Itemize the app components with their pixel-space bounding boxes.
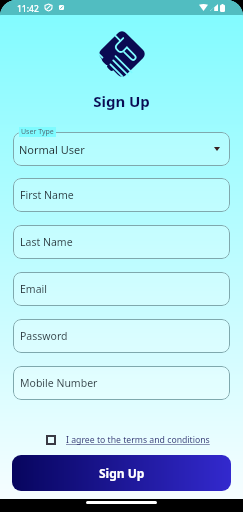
staticText: Email: [20, 282, 47, 296]
staticText: Password: [20, 329, 68, 343]
button[interactable]: First Name: [13, 178, 230, 212]
staticText: User Type: [21, 127, 54, 137]
staticText: First Name: [20, 188, 74, 202]
staticText: Last Name: [20, 235, 73, 249]
button[interactable]: Agree to terms checkbox: [46, 435, 56, 445]
staticText: Sign Up: [0, 91, 243, 111]
staticText: Normal User: [19, 142, 85, 157]
button[interactable]: Sign Up: [12, 455, 231, 491]
button[interactable]: Mobile Number: [13, 366, 230, 400]
staticText: Mobile Number: [20, 376, 98, 390]
button[interactable]: Last Name: [13, 225, 230, 259]
button[interactable]: I agree to the terms and conditions: [66, 434, 210, 446]
staticText: 11:42: [17, 3, 39, 15]
button[interactable]: Email: [13, 272, 230, 306]
button[interactable]: Password: [13, 319, 230, 353]
button[interactable]: Normal User: [13, 132, 230, 166]
staticText: Sign Up: [99, 465, 145, 481]
